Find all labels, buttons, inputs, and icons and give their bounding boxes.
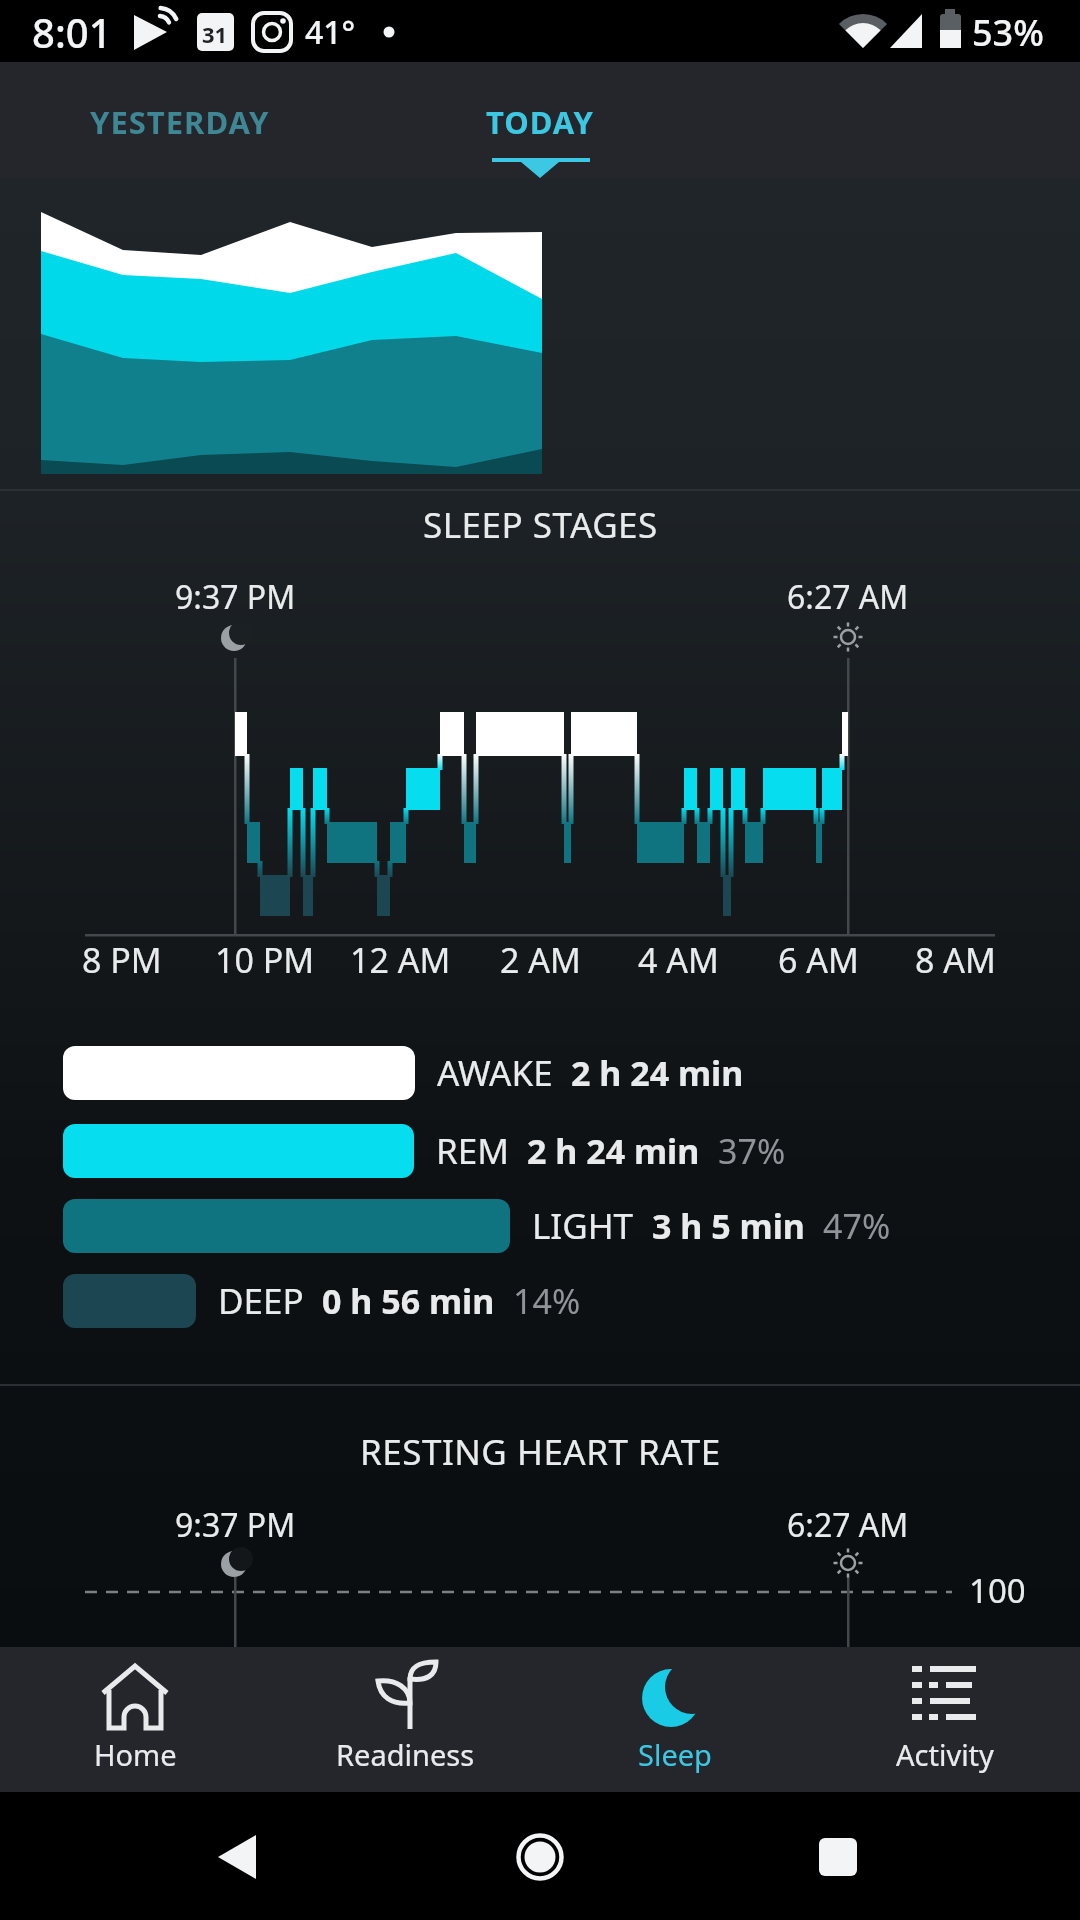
staticText: 4 AM bbox=[638, 937, 719, 983]
staticText: 3 h 5 min bbox=[652, 1203, 805, 1249]
staticText: 41° bbox=[305, 10, 356, 54]
staticText: 47% bbox=[823, 1203, 891, 1249]
staticText: DEEP bbox=[218, 1277, 304, 1325]
staticText: 14% bbox=[513, 1278, 581, 1324]
button[interactable]: YESTERDAY bbox=[40, 78, 320, 166]
button[interactable]: Activity bbox=[810, 1647, 1080, 1792]
staticText: RESTING HEART RATE bbox=[360, 1428, 721, 1476]
staticText: SLEEP STAGES bbox=[423, 501, 658, 549]
staticText: 9:37 PM bbox=[175, 1503, 296, 1547]
button[interactable] bbox=[778, 1797, 898, 1917]
button[interactable] bbox=[178, 1797, 298, 1917]
staticText: Home bbox=[94, 1735, 177, 1774]
staticText: 0 h 56 min bbox=[322, 1278, 495, 1324]
staticText: 53% bbox=[972, 8, 1044, 57]
staticText: 2 h 24 min bbox=[527, 1128, 700, 1174]
staticText: 100 bbox=[969, 1568, 1026, 1613]
staticText: 8:01 bbox=[32, 5, 112, 59]
staticText: 2 h 24 min bbox=[571, 1050, 744, 1096]
button[interactable]: TODAY bbox=[450, 78, 630, 166]
staticText: 37% bbox=[718, 1128, 786, 1174]
staticText: 2 AM bbox=[500, 937, 581, 983]
button[interactable] bbox=[480, 1797, 600, 1917]
staticText: Sleep bbox=[638, 1735, 712, 1774]
staticText: 10 PM bbox=[215, 937, 315, 983]
staticText: LIGHT bbox=[532, 1202, 634, 1250]
staticText: AWAKE bbox=[437, 1049, 553, 1097]
staticText: 12 AM bbox=[350, 937, 451, 983]
staticText: 8 AM bbox=[915, 937, 996, 983]
staticText: 9:37 PM bbox=[175, 575, 296, 619]
staticText: 6 AM bbox=[778, 937, 859, 983]
staticText: 8 PM bbox=[82, 937, 162, 983]
staticText: Activity bbox=[896, 1735, 994, 1774]
staticText: TODAY bbox=[486, 101, 594, 143]
staticText: 6:27 AM bbox=[787, 1503, 909, 1547]
staticText: 6:27 AM bbox=[787, 575, 909, 619]
button[interactable]: Readiness bbox=[270, 1647, 540, 1792]
button[interactable]: Sleep bbox=[540, 1647, 810, 1792]
staticText: YESTERDAY bbox=[90, 101, 270, 143]
button[interactable]: Home bbox=[0, 1647, 270, 1792]
staticText: Readiness bbox=[336, 1735, 475, 1774]
staticText: REM bbox=[436, 1127, 509, 1175]
staticText: 31 bbox=[202, 19, 228, 49]
